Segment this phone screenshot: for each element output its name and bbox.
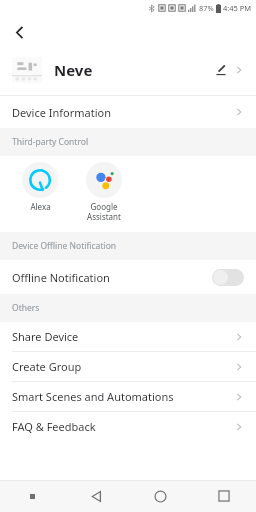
button[interactable]: Back	[6, 19, 32, 45]
staticText: 87%	[199, 3, 214, 13]
staticText: Google Assistant	[87, 201, 121, 222]
button[interactable]: Home	[128, 490, 192, 503]
staticText: Neve	[54, 60, 93, 80]
button[interactable]: Alexa	[8, 162, 72, 212]
staticText: Device Offline Notification	[12, 240, 117, 252]
staticText: Create Group	[12, 359, 82, 374]
staticText: Offline Notification	[12, 270, 110, 285]
staticText: Device Information	[12, 105, 112, 120]
other: Edit	[212, 61, 230, 79]
staticText: 4:45 PM	[223, 3, 252, 13]
staticText: Others	[12, 302, 40, 314]
button[interactable]: Create Group	[0, 352, 256, 381]
staticText: Third-party Control	[12, 136, 89, 148]
other: Offline Notification toggle	[212, 269, 244, 286]
button[interactable]: Share Device	[0, 322, 256, 351]
button[interactable]: Device Information	[0, 96, 256, 128]
button[interactable]: Offline Notification	[0, 260, 256, 294]
staticText: Share Device	[12, 329, 79, 344]
button[interactable]: Neve	[0, 48, 256, 92]
staticText: Smart Scenes and Automations	[12, 389, 174, 404]
button[interactable]: Recents	[192, 490, 256, 502]
button[interactable]: FAQ & Feedback	[0, 412, 256, 441]
staticText: Alexa	[30, 201, 51, 212]
staticText: FAQ & Feedback	[12, 419, 96, 434]
button[interactable]: Back	[64, 490, 128, 503]
button[interactable]: Google Assistant	[72, 162, 136, 222]
button[interactable]: Smart Scenes and Automations	[0, 382, 256, 411]
